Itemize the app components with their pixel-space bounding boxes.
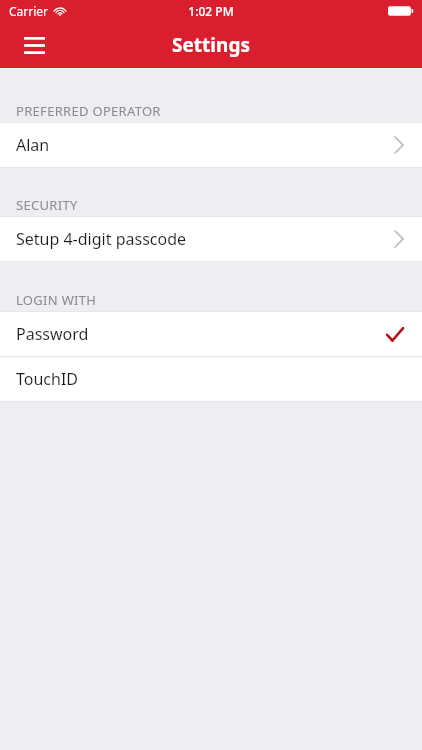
staticText: Password [16,323,89,345]
button[interactable]: TouchID [0,357,422,401]
staticText: 1:02 PM [188,3,234,19]
staticText: LOGIN WITH [16,291,97,309]
button[interactable]: Menu [12,25,56,65]
button[interactable]: Setup 4-digit passcode [0,217,422,261]
staticText: PREFERRED OPERATOR [16,102,161,120]
button[interactable]: Alan [0,123,422,167]
staticText: Setup 4-digit passcode [16,228,187,250]
staticText: Carrier [9,3,49,19]
staticText: Settings [172,32,250,58]
button[interactable]: Password [0,312,422,356]
staticText: Alan [16,134,50,156]
staticText: SECURITY [16,196,78,214]
staticText: TouchID [16,368,79,390]
